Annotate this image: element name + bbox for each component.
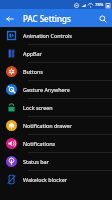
button[interactable]: Notifications <box>0 135 112 152</box>
staticText: 78% <box>95 2 104 8</box>
staticText: Wakelock blocker <box>23 176 68 183</box>
button[interactable]: Status bar <box>0 153 112 170</box>
staticText: Animation Controls <box>23 32 72 39</box>
staticText: Status bar <box>23 158 49 165</box>
staticText: Lock screen <box>23 104 53 111</box>
button[interactable]: Lock screen <box>0 99 112 116</box>
staticText: Buttons <box>23 68 43 75</box>
button[interactable]: Buttons <box>0 63 112 80</box>
button[interactable]: Wakelock blocker <box>0 171 112 188</box>
staticText: AppBar <box>23 50 42 57</box>
staticText: Notification drawer <box>23 122 72 129</box>
button[interactable]: Animation Controls <box>0 27 112 44</box>
button[interactable]: Back <box>3 12 16 25</box>
button[interactable]: Search <box>96 12 109 25</box>
button[interactable]: Notification drawer <box>0 117 112 134</box>
staticText: PAC Settings <box>23 13 71 24</box>
button[interactable]: Gesture Anywhere <box>0 81 112 98</box>
button[interactable]: AppBar <box>0 45 112 62</box>
staticText: Gesture Anywhere <box>23 86 70 93</box>
staticText: Notifications <box>23 140 56 147</box>
